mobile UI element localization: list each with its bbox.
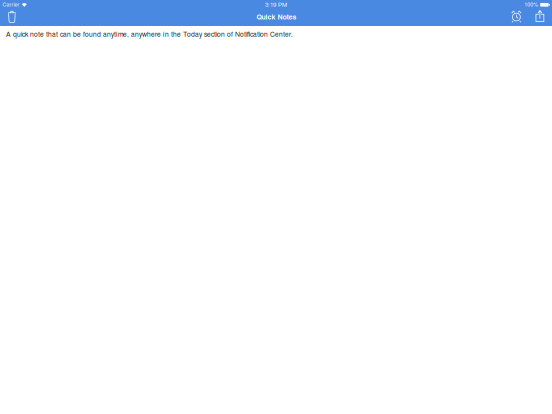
staticText: Carrier	[3, 2, 20, 8]
staticText: 3:19 PM	[265, 2, 287, 8]
button[interactable]: Delete note	[2, 9, 22, 25]
button[interactable]: Share	[531, 8, 549, 24]
staticText: A quick note that can be found anytime, …	[6, 31, 293, 38]
staticText: Quick Notes	[256, 14, 296, 21]
button[interactable]: Recents	[507, 9, 525, 25]
staticText: 100%	[524, 2, 538, 8]
